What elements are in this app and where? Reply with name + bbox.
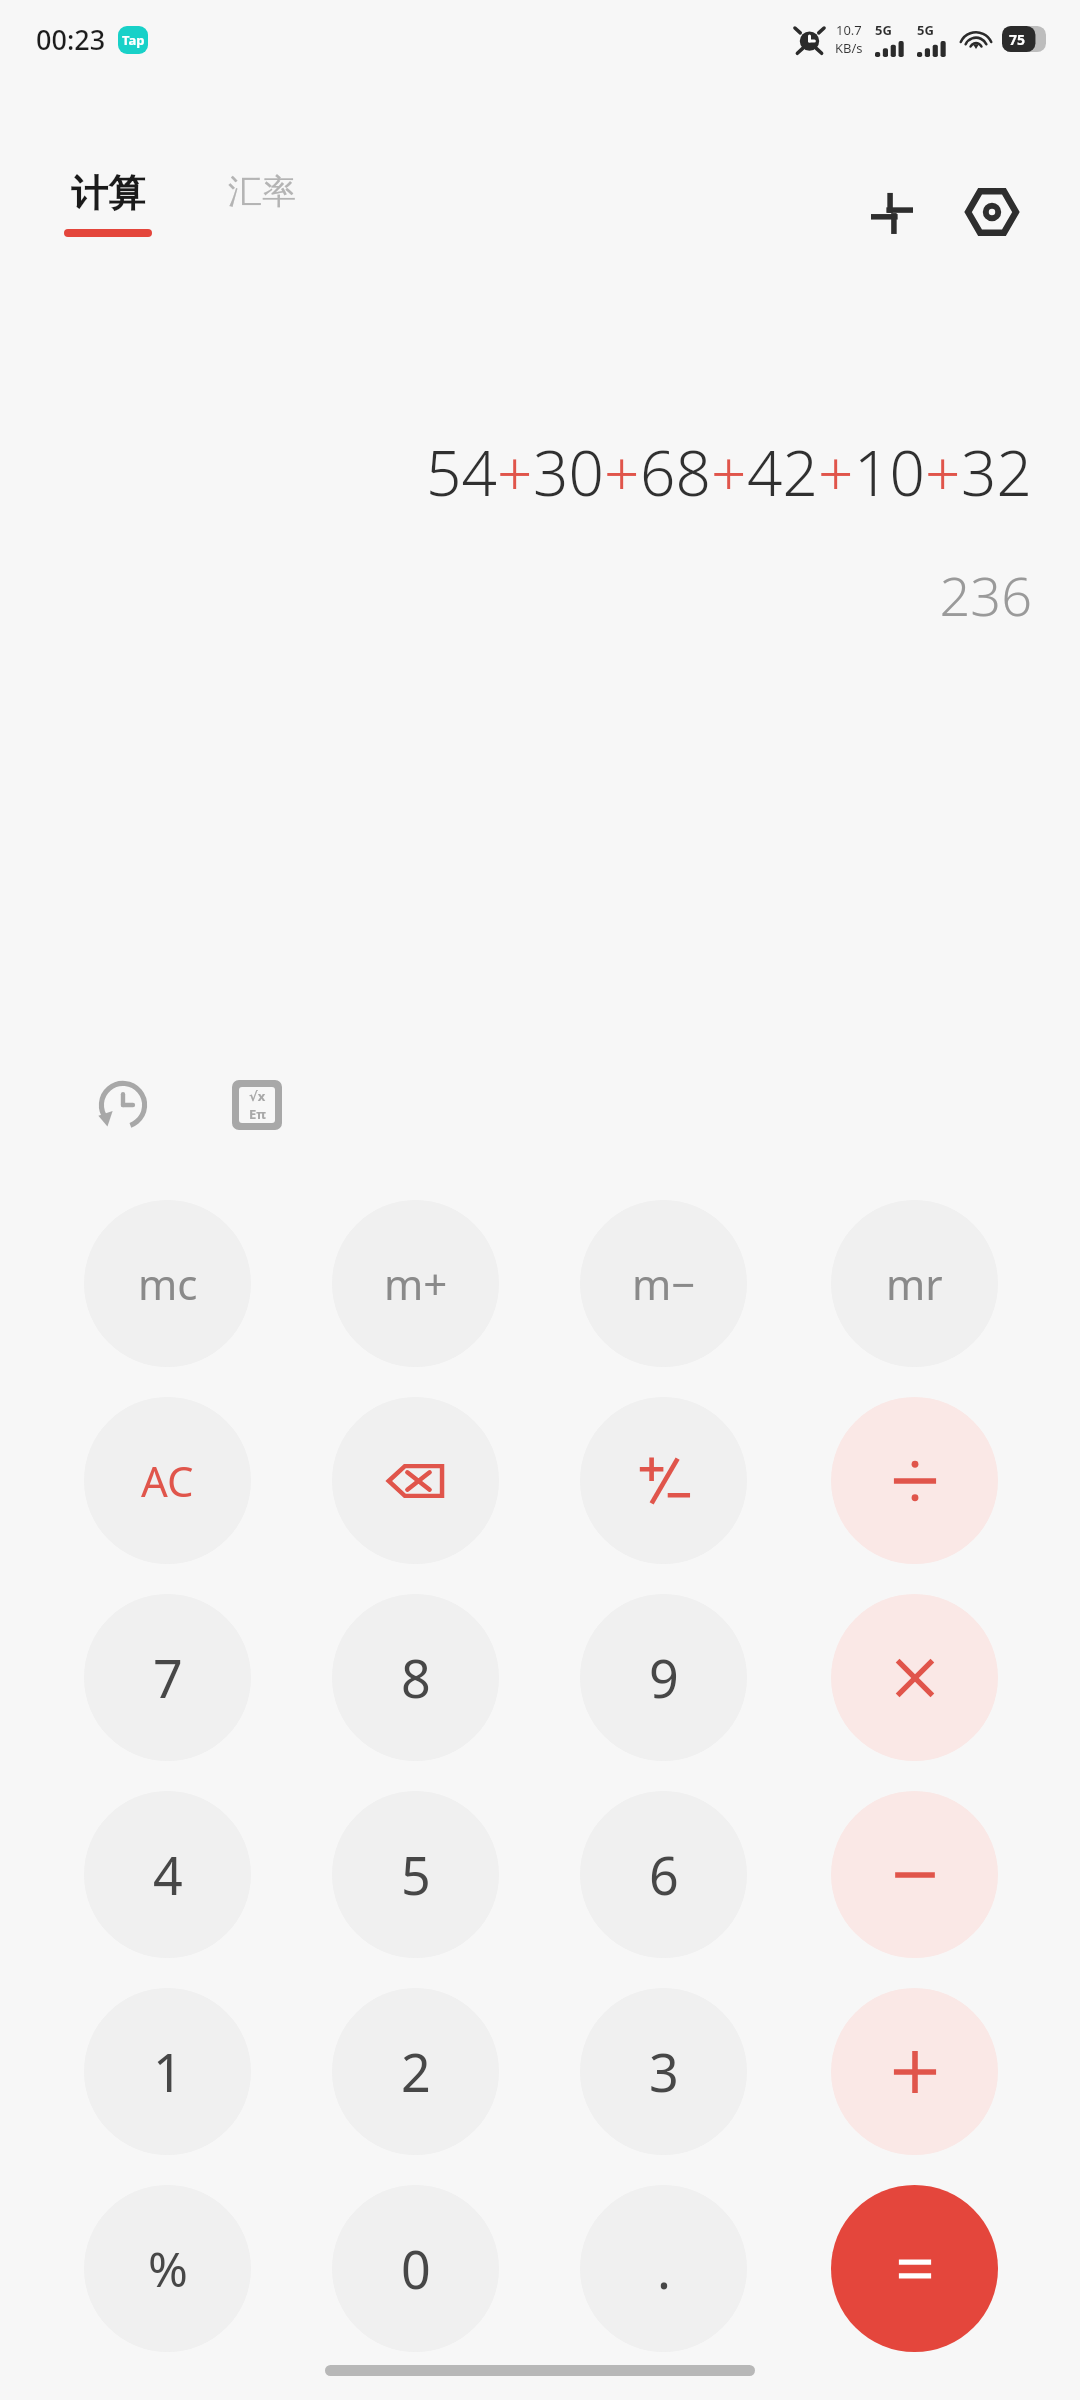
button[interactable]: History: [78, 1060, 168, 1150]
button[interactable]: 7: [84, 1594, 251, 1761]
button[interactable]: Equals: [831, 2185, 998, 2352]
button[interactable]: m+: [332, 1200, 499, 1367]
button[interactable]: Plus minus: [580, 1397, 747, 1564]
staticText: KB/s: [835, 39, 863, 57]
staticText: 计算: [71, 170, 145, 217]
button[interactable]: Backspace: [332, 1397, 499, 1564]
staticText: √x: [249, 1087, 266, 1105]
button[interactable]: m−: [580, 1200, 747, 1367]
staticText: 5G: [917, 21, 934, 39]
button[interactable]: Scientific mode: [212, 1060, 302, 1150]
staticText: 75: [1009, 30, 1026, 49]
staticText: +: [497, 430, 533, 514]
staticText: +: [925, 430, 961, 514]
staticText: 3: [649, 2036, 679, 2107]
staticText: 6: [649, 1839, 679, 1910]
button[interactable]: 9: [580, 1594, 747, 1761]
staticText: 4: [153, 1839, 183, 1910]
staticText: 54: [426, 430, 497, 514]
button[interactable]: 8: [332, 1594, 499, 1761]
button[interactable]: 1: [84, 1988, 251, 2155]
button[interactable]: .: [580, 2185, 747, 2352]
button[interactable]: 5: [332, 1791, 499, 1958]
staticText: 汇率: [228, 170, 296, 213]
staticText: +: [604, 430, 640, 514]
staticText: mr: [886, 1255, 943, 1312]
staticText: 32: [961, 430, 1032, 514]
staticText: AC: [141, 1452, 194, 1509]
staticText: 236: [939, 558, 1032, 632]
staticText: 7: [153, 1642, 183, 1713]
staticText: 5G: [875, 21, 892, 39]
staticText: 30: [533, 430, 604, 514]
button[interactable]: 3: [580, 1988, 747, 2155]
staticText: +: [818, 430, 854, 514]
button[interactable]: 6: [580, 1791, 747, 1958]
button[interactable]: Collapse: [854, 174, 930, 250]
staticText: 00:23: [36, 21, 106, 58]
staticText: 8: [401, 1642, 431, 1713]
staticText: Tap: [122, 31, 145, 49]
staticText: 10.7: [836, 21, 862, 39]
button[interactable]: Minus: [831, 1791, 998, 1958]
staticText: .: [657, 2233, 671, 2304]
staticText: 9: [649, 1642, 679, 1713]
button[interactable]: mc: [84, 1200, 251, 1367]
button[interactable]: AC: [84, 1397, 251, 1564]
button[interactable]: 4: [84, 1791, 251, 1958]
button[interactable]: Divide: [831, 1397, 998, 1564]
staticText: m+: [384, 1255, 448, 1312]
staticText: 5: [401, 1839, 431, 1910]
staticText: m−: [632, 1255, 696, 1312]
button[interactable]: 计算: [60, 170, 156, 237]
button[interactable]: mr: [831, 1200, 998, 1367]
staticText: mc: [138, 1255, 198, 1312]
button[interactable]: 汇率: [224, 170, 300, 213]
button[interactable]: Multiply: [831, 1594, 998, 1761]
staticText: 1: [153, 2036, 183, 2107]
staticText: 68: [640, 430, 711, 514]
staticText: Eπ: [249, 1105, 266, 1123]
button[interactable]: %: [84, 2185, 251, 2352]
staticText: 2: [401, 2036, 431, 2107]
button[interactable]: Plus: [831, 1988, 998, 2155]
staticText: +: [711, 430, 747, 514]
button[interactable]: 0: [332, 2185, 499, 2352]
staticText: 10: [854, 430, 925, 514]
button[interactable]: Settings: [954, 174, 1030, 250]
staticText: 42: [747, 430, 818, 514]
staticText: 0: [401, 2233, 431, 2304]
staticText: %: [148, 2236, 188, 2301]
button[interactable]: 2: [332, 1988, 499, 2155]
